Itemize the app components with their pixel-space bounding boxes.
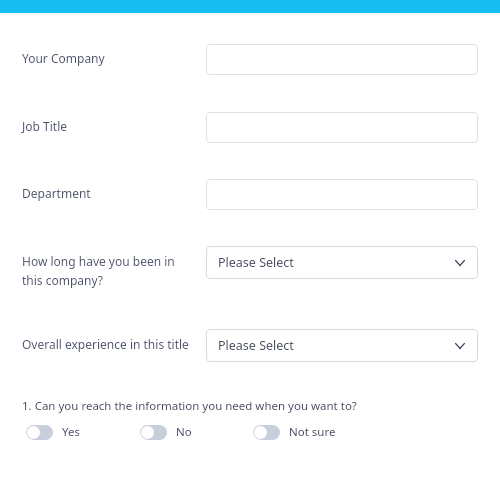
staticText: Yes bbox=[62, 424, 80, 440]
button[interactable]: Not sure bbox=[253, 424, 336, 440]
staticText: this company? bbox=[22, 272, 104, 288]
button[interactable]: No bbox=[140, 424, 192, 440]
button[interactable]: Please Select bbox=[206, 329, 478, 362]
button[interactable]: Yes bbox=[26, 424, 80, 440]
staticText: No bbox=[176, 424, 192, 440]
button[interactable]: Text input field bbox=[206, 44, 478, 75]
staticText: Please Select bbox=[218, 337, 294, 354]
button[interactable]: Text input field bbox=[206, 179, 478, 210]
button[interactable]: Please Select bbox=[206, 246, 478, 279]
button[interactable]: Text input field bbox=[206, 112, 478, 143]
staticText: How long have you been in bbox=[22, 253, 175, 269]
staticText: Department bbox=[22, 185, 91, 201]
staticText: Not sure bbox=[289, 424, 336, 440]
staticText: 1. Can you reach the information you nee… bbox=[22, 398, 357, 414]
staticText: Job Title bbox=[22, 118, 68, 134]
staticText: Your Company bbox=[22, 50, 105, 66]
staticText: Please Select bbox=[218, 254, 294, 271]
staticText: Overall experience in this title bbox=[22, 336, 189, 352]
